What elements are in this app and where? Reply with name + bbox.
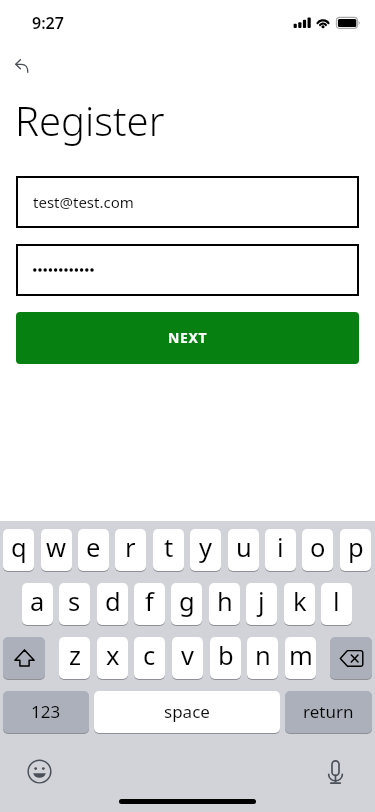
staticText: n bbox=[255, 638, 271, 673]
button[interactable]: m bbox=[285, 637, 316, 679]
button[interactable]: l bbox=[321, 583, 352, 625]
button[interactable]: v bbox=[172, 637, 203, 679]
button[interactable]: i bbox=[265, 529, 296, 571]
button[interactable]: a bbox=[22, 583, 53, 625]
staticText: 123 bbox=[31, 700, 61, 723]
button[interactable]: Shift bbox=[3, 637, 45, 679]
staticText: b bbox=[218, 638, 234, 673]
staticText: f bbox=[145, 584, 154, 619]
button[interactable]: z bbox=[59, 637, 90, 679]
button[interactable]: q bbox=[3, 529, 34, 571]
staticText: p bbox=[348, 530, 364, 565]
staticText: h bbox=[217, 584, 233, 619]
staticText: d bbox=[105, 584, 121, 619]
staticText: t bbox=[164, 530, 174, 565]
button[interactable]: n bbox=[247, 637, 278, 679]
button[interactable]: x bbox=[97, 637, 128, 679]
button[interactable]: o bbox=[302, 529, 333, 571]
staticText: NEXT bbox=[168, 328, 208, 347]
staticText: return bbox=[303, 700, 354, 723]
staticText: g bbox=[179, 584, 195, 619]
staticText: w bbox=[46, 530, 67, 565]
button[interactable]: f bbox=[134, 583, 165, 625]
button[interactable]: Back bbox=[6, 52, 40, 80]
button[interactable]: h bbox=[209, 583, 240, 625]
button[interactable]: r bbox=[115, 529, 146, 571]
button[interactable]: k bbox=[284, 583, 315, 625]
button[interactable]: test@test.com bbox=[16, 176, 359, 228]
button[interactable]: b bbox=[210, 637, 241, 679]
button[interactable]: e bbox=[78, 529, 109, 571]
staticText: o bbox=[310, 530, 326, 565]
staticText: a bbox=[30, 584, 45, 619]
button[interactable]: Emoji keyboard bbox=[23, 755, 55, 787]
staticText: y bbox=[199, 530, 213, 565]
button[interactable]: u bbox=[228, 529, 259, 571]
staticText: x bbox=[106, 638, 120, 673]
staticText: Register bbox=[15, 93, 165, 147]
button[interactable]: return bbox=[285, 691, 372, 733]
staticText: e bbox=[86, 530, 101, 565]
button[interactable]: c bbox=[134, 637, 165, 679]
button[interactable]: g bbox=[171, 583, 202, 625]
staticText: c bbox=[143, 638, 156, 673]
button[interactable]: p bbox=[340, 529, 371, 571]
staticText: r bbox=[125, 530, 136, 565]
staticText: i bbox=[277, 530, 284, 565]
button[interactable]: Backspace bbox=[330, 637, 372, 679]
staticText: s bbox=[68, 584, 81, 619]
staticText: 9:27 bbox=[32, 12, 64, 34]
button[interactable]: Dictation bbox=[319, 756, 351, 788]
staticText: v bbox=[181, 638, 194, 673]
button[interactable]: t bbox=[153, 529, 184, 571]
staticText: l bbox=[333, 584, 340, 619]
staticText: q bbox=[11, 530, 27, 565]
staticText: u bbox=[236, 530, 252, 565]
staticText: j bbox=[258, 584, 265, 619]
button[interactable]: w bbox=[41, 529, 72, 571]
button[interactable]: d bbox=[97, 583, 128, 625]
button[interactable]: space bbox=[94, 691, 280, 733]
staticText: m bbox=[289, 638, 313, 673]
staticText: k bbox=[293, 584, 307, 619]
button[interactable]: s bbox=[59, 583, 90, 625]
staticText: test@test.com bbox=[33, 192, 134, 212]
button[interactable]: 123 bbox=[3, 691, 89, 733]
button[interactable]: NEXT bbox=[16, 312, 359, 364]
button[interactable] bbox=[16, 244, 359, 296]
button[interactable]: j bbox=[246, 583, 277, 625]
button[interactable]: y bbox=[190, 529, 221, 571]
staticText: z bbox=[69, 638, 81, 673]
staticText: space bbox=[164, 700, 210, 723]
